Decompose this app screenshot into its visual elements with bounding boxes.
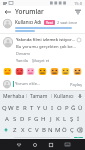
button[interactable]: F (26, 113, 33, 124)
button[interactable]: Emoji (61, 67, 70, 76)
button[interactable]: Q (1, 102, 7, 113)
staticText: İ (77, 115, 80, 123)
button[interactable]: M (54, 124, 61, 135)
staticText: Q (2, 104, 7, 112)
button[interactable]: Emoji (26, 67, 35, 76)
staticText: Devamı (16, 51, 31, 56)
button[interactable]: Sırala (73, 7, 82, 16)
button[interactable]: Shift (1, 124, 11, 135)
button[interactable]: Tamam (27, 91, 51, 101)
staticText: Yakında filmi izlemek istiyorum, arkadaş… (16, 37, 76, 43)
button[interactable]: Kullanıcı Adı (0, 17, 85, 33)
button[interactable]: R (21, 102, 28, 113)
staticText: H (41, 115, 46, 123)
button[interactable]: Gönder (74, 137, 83, 138)
button[interactable]: Geri (3, 7, 12, 16)
button[interactable]: K (54, 113, 61, 124)
button[interactable]: Emoji (15, 67, 24, 76)
button[interactable]: Ana ekran (27, 139, 43, 150)
staticText: Ğ (71, 104, 76, 112)
button[interactable]: X (19, 124, 26, 135)
button[interactable]: Emoji (50, 67, 59, 76)
button[interactable]: Z (11, 124, 19, 135)
staticText: Ş (70, 115, 74, 123)
button[interactable]: Sil (75, 124, 84, 135)
button[interactable]: Geri (11, 139, 27, 150)
button[interactable]: Son uygulamalar (43, 139, 59, 150)
button[interactable]: Şikayet et (32, 58, 50, 63)
staticText: D (20, 115, 25, 123)
button[interactable]: I (49, 102, 56, 113)
button[interactable]: Ş (68, 113, 75, 124)
button[interactable]: Merhaba (2, 91, 26, 101)
staticText: B (42, 126, 46, 134)
button[interactable]: Emoji (3, 67, 12, 76)
button[interactable]: Sesle yaz (76, 91, 83, 101)
staticText: Bu yorumu gerçekten çok beğendim. (16, 44, 76, 50)
button[interactable]: C (26, 124, 33, 135)
button[interactable]: Klavye (59, 139, 75, 150)
button[interactable]: Ğ (70, 102, 77, 113)
staticText: Paylaş (70, 82, 82, 87)
button[interactable]: O (56, 102, 63, 113)
staticText: Ç (70, 126, 74, 134)
staticText: Yorum ekle... (15, 81, 41, 87)
button[interactable]: H (40, 113, 47, 124)
button[interactable]: D (19, 113, 26, 124)
staticText: E (16, 104, 20, 112)
button[interactable]: Y (35, 102, 42, 113)
button[interactable]: J (47, 113, 54, 124)
button[interactable]: V (33, 124, 40, 135)
button[interactable]: G (33, 113, 40, 124)
staticText: M (55, 126, 61, 134)
staticText: C (28, 126, 32, 134)
staticText: Yorumlar (15, 7, 44, 16)
staticText: N (48, 126, 53, 134)
staticText: I (51, 104, 54, 112)
staticText: G (34, 115, 39, 123)
button[interactable]: Kullanıcı (52, 91, 76, 101)
button[interactable]: İ (75, 113, 82, 124)
button[interactable]: Ü (77, 102, 84, 113)
button[interactable]: E (14, 102, 21, 113)
button[interactable]: Emoji (73, 67, 82, 76)
button[interactable]: Ç (68, 124, 75, 135)
staticText: Ü (78, 104, 83, 112)
staticText: 15:0 (74, 1, 82, 6)
button[interactable]: W (7, 102, 14, 113)
button[interactable]: Ö (61, 124, 68, 135)
staticText: Tamam (30, 93, 48, 100)
staticText: A (5, 115, 9, 123)
button[interactable]: U (42, 102, 49, 113)
staticText: 2 saat önce (57, 20, 78, 25)
staticText: Şikayet et (32, 58, 50, 63)
staticText: P (65, 104, 69, 112)
staticText: X (21, 126, 25, 134)
button[interactable]: Paylaş (70, 82, 82, 87)
button[interactable]: N (47, 124, 54, 135)
staticText: Kullanıcı Adı (15, 19, 42, 25)
button[interactable]: T (28, 102, 35, 113)
staticText: K (56, 115, 60, 123)
button[interactable]: Yorum ekle... (13, 81, 70, 87)
staticText: Yeni (46, 20, 53, 25)
button[interactable]: Emoji (38, 67, 47, 76)
staticText: W (8, 104, 14, 112)
button[interactable]: Yanıtla (16, 58, 28, 63)
staticText: Z (13, 126, 17, 134)
staticText: L (63, 115, 67, 123)
staticText: T (30, 104, 34, 112)
button[interactable]: B (40, 124, 47, 135)
button[interactable]: A (3, 113, 11, 124)
button[interactable]: L (61, 113, 68, 124)
button[interactable]: Yakında filmi izlemek istiyorum, arkadaş… (0, 34, 85, 58)
button[interactable]: P (63, 102, 70, 113)
button[interactable]: S (11, 113, 19, 124)
button[interactable]: Beğen (76, 37, 82, 43)
